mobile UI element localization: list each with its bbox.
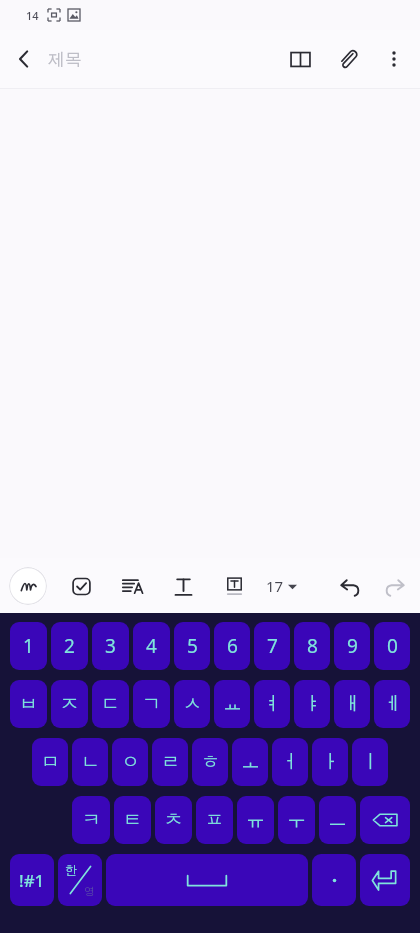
- button[interactable]: ㅠ: [237, 796, 274, 844]
- button[interactable]: Checklist: [64, 569, 98, 603]
- button[interactable]: ㅑ: [294, 680, 330, 728]
- button[interactable]: Back: [0, 35, 48, 83]
- staticText: 한: [65, 862, 77, 877]
- button[interactable]: ㅌ: [114, 796, 151, 844]
- button[interactable]: 8: [294, 622, 330, 670]
- button[interactable]: Enter: [360, 854, 410, 906]
- button[interactable]: ㅜ: [278, 796, 315, 844]
- staticText: ㄹ: [161, 750, 180, 774]
- staticText: ㅜ: [287, 808, 306, 832]
- button[interactable]: ㅓ: [272, 738, 308, 786]
- staticText: ㅣ: [361, 750, 380, 774]
- button[interactable]: Text format: [166, 569, 200, 603]
- staticText: 17: [266, 576, 284, 596]
- staticText: 영: [84, 884, 95, 898]
- staticText: 3: [105, 633, 116, 659]
- staticText: ㅍ: [205, 808, 224, 832]
- staticText: ㅎ: [201, 750, 220, 774]
- button[interactable]: ㅋ: [72, 796, 110, 844]
- staticText: ㅑ: [303, 692, 322, 716]
- button[interactable]: ㄱ: [133, 680, 170, 728]
- staticText: ㄴ: [81, 750, 100, 774]
- staticText: 7: [267, 633, 278, 659]
- button[interactable]: Attach: [324, 35, 372, 83]
- button[interactable]: ㅕ: [254, 680, 290, 728]
- button[interactable]: ㅎ: [192, 738, 228, 786]
- staticText: 제목: [48, 49, 82, 70]
- button[interactable]: 7: [254, 622, 290, 670]
- button[interactable]: Text box: [217, 569, 251, 603]
- button[interactable]: ㅊ: [155, 796, 192, 844]
- staticText: ㅁ: [41, 750, 60, 774]
- staticText: ㅔ: [383, 692, 402, 716]
- button[interactable]: Language: [58, 854, 102, 906]
- button[interactable]: ㄹ: [152, 738, 188, 786]
- button[interactable]: ㅛ: [214, 680, 250, 728]
- button[interactable]: ㅔ: [374, 680, 410, 728]
- staticText: ㅛ: [223, 692, 242, 716]
- staticText: 14: [26, 8, 39, 23]
- staticText: ㄷ: [101, 692, 120, 716]
- staticText: ㅓ: [281, 750, 300, 774]
- button[interactable]: ㅏ: [312, 738, 348, 786]
- button[interactable]: ㅁ: [32, 738, 68, 786]
- button[interactable]: ㅡ: [319, 796, 356, 844]
- button[interactable]: Backspace: [360, 796, 410, 844]
- button[interactable]: ㅈ: [51, 680, 88, 728]
- button[interactable]: 0: [374, 622, 410, 670]
- button[interactable]: Redo: [372, 564, 416, 608]
- button[interactable]: ㄷ: [92, 680, 129, 728]
- button[interactable]: Undo: [328, 564, 372, 608]
- staticText: ㅏ: [321, 750, 340, 774]
- button[interactable]: More options: [372, 37, 416, 81]
- staticText: 2: [64, 633, 75, 659]
- staticText: 9: [347, 633, 358, 659]
- button[interactable]: ㄴ: [72, 738, 108, 786]
- button[interactable]: Symbols: [10, 854, 54, 906]
- staticText: 1: [23, 633, 34, 659]
- staticText: !#1: [19, 869, 45, 892]
- staticText: ㄱ: [142, 692, 161, 716]
- button[interactable]: Handwriting: [9, 567, 47, 605]
- button[interactable]: 2: [51, 622, 88, 670]
- button[interactable]: ㅅ: [174, 680, 210, 728]
- staticText: ㅌ: [123, 808, 142, 832]
- staticText: ㅇ: [121, 750, 140, 774]
- staticText: ㅅ: [183, 692, 202, 716]
- button[interactable]: Paragraph style: [115, 569, 149, 603]
- staticText: ㅠ: [246, 808, 265, 832]
- staticText: 8: [307, 633, 318, 659]
- button[interactable]: 9: [334, 622, 370, 670]
- staticText: ㅕ: [263, 692, 282, 716]
- staticText: ㅗ: [241, 750, 260, 774]
- staticText: 4: [146, 633, 157, 659]
- button[interactable]: 4: [133, 622, 170, 670]
- staticText: 0: [387, 633, 398, 659]
- staticText: 6: [227, 633, 238, 659]
- button[interactable]: ㅂ: [10, 680, 47, 728]
- staticText: ㅋ: [82, 808, 101, 832]
- button[interactable]: Period: [312, 854, 356, 906]
- button[interactable]: ㅐ: [334, 680, 370, 728]
- button[interactable]: 5: [174, 622, 210, 670]
- button[interactable]: ㅇ: [112, 738, 148, 786]
- staticText: ㅊ: [164, 808, 183, 832]
- button[interactable]: 1: [10, 622, 47, 670]
- button[interactable]: ㅣ: [352, 738, 388, 786]
- button[interactable]: Page view: [276, 35, 324, 83]
- button[interactable]: 17: [264, 576, 299, 596]
- button[interactable]: Space: [106, 854, 308, 906]
- staticText: ㅐ: [343, 692, 362, 716]
- staticText: ㅡ: [328, 808, 347, 832]
- staticText: ㅂ: [19, 692, 38, 716]
- button[interactable]: ㅗ: [232, 738, 268, 786]
- staticText: ㅈ: [60, 692, 79, 716]
- staticText: 5: [187, 633, 198, 659]
- button[interactable]: 제목: [48, 30, 276, 88]
- button[interactable]: 3: [92, 622, 129, 670]
- button[interactable]: ㅍ: [196, 796, 233, 844]
- button[interactable]: 6: [214, 622, 250, 670]
